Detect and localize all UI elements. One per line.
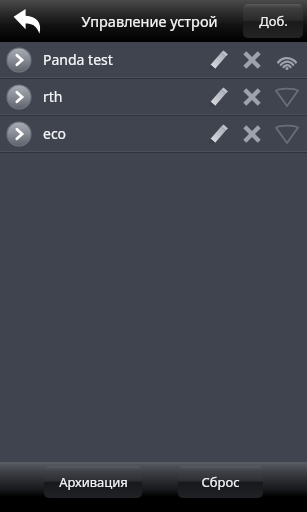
button[interactable]: Edit <box>201 116 235 151</box>
staticText: Архивация <box>59 473 128 491</box>
staticText: Panda test <box>43 50 201 69</box>
button[interactable]: Signal <box>269 116 305 151</box>
button[interactable]: Сброс <box>178 466 263 498</box>
staticText: rth <box>43 87 201 106</box>
button[interactable]: Edit <box>201 42 235 77</box>
button[interactable]: Signal <box>269 42 305 77</box>
staticText: Управление устрой <box>81 11 218 31</box>
button[interactable]: Delete <box>235 116 269 151</box>
button[interactable]: Архивация <box>44 466 142 498</box>
button[interactable]: Signal <box>269 79 305 114</box>
button[interactable]: eco <box>0 116 307 151</box>
button[interactable]: Panda test <box>0 42 307 77</box>
button[interactable]: Delete <box>235 79 269 114</box>
button[interactable]: Доб. <box>243 4 303 38</box>
staticText: Доб. <box>259 12 288 30</box>
button[interactable]: Back <box>6 0 50 42</box>
staticText: Сброс <box>201 473 240 491</box>
button[interactable]: rth <box>0 79 307 114</box>
button[interactable]: Edit <box>201 79 235 114</box>
button[interactable]: Delete <box>235 42 269 77</box>
staticText: eco <box>43 124 201 143</box>
